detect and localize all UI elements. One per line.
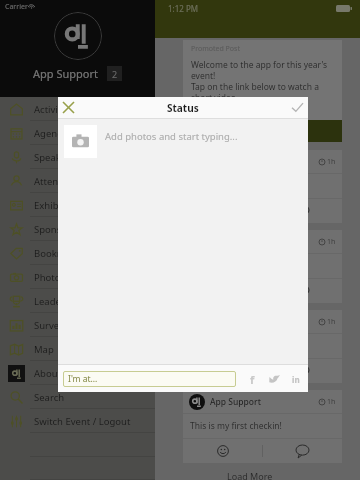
button[interactable]: Share on Twitter (267, 372, 281, 386)
button[interactable]: Switch Event / Logout (0, 409, 155, 433)
staticText: App Support (33, 66, 98, 81)
button[interactable]: Search (0, 385, 155, 409)
staticText: About (34, 367, 61, 380)
staticText: Switch Event / Logout (34, 415, 131, 428)
staticText: 1h (327, 397, 336, 407)
button[interactable]: Agenda (0, 121, 155, 145)
button[interactable]: Leaderboard (0, 289, 155, 313)
staticText: I'm at... (68, 373, 98, 385)
button[interactable]: App Support (183, 230, 342, 303)
button[interactable]: Photos (0, 265, 155, 289)
staticText: This is my first checkin! (190, 420, 282, 432)
staticText: 1h (327, 157, 336, 167)
button[interactable]: Close (58, 97, 79, 118)
button[interactable]: I'm at... (63, 371, 236, 387)
staticText: Attendees (34, 175, 80, 188)
button[interactable]: Load More (227, 470, 273, 480)
staticText: Carrier (5, 2, 28, 12)
staticText: Search (34, 391, 65, 404)
button[interactable]: Share on Facebook (245, 372, 259, 386)
button[interactable]: Comment (263, 199, 342, 223)
button[interactable]: Like (183, 359, 262, 383)
staticText: 1h (327, 317, 336, 327)
staticText: Leaderboard (34, 295, 92, 308)
button[interactable]: Map (0, 337, 155, 361)
staticText: 1:12 PM (168, 3, 199, 14)
button[interactable]: Activity (0, 97, 155, 121)
button[interactable]: Your Video Guide (183, 120, 342, 142)
staticText: Speakers (34, 151, 75, 164)
button[interactable]: Surveys (0, 313, 155, 337)
button[interactable]: App Support (183, 150, 342, 223)
button[interactable]: Exhibitors (0, 193, 155, 217)
staticText: Sponsors (34, 223, 76, 236)
staticText: Status (167, 101, 199, 115)
staticText: Bookmarks (34, 247, 85, 260)
button[interactable]: Comment (263, 439, 342, 463)
button[interactable]: Share on LinkedIn (289, 372, 303, 386)
button[interactable]: Sponsors (0, 217, 155, 241)
button[interactable]: Comment (263, 359, 342, 383)
staticText: f (250, 372, 255, 386)
staticText: Exhibitors (34, 199, 79, 212)
button[interactable]: Speakers (0, 145, 155, 169)
staticText: 2 (112, 68, 118, 80)
button[interactable]: Bookmarks (0, 241, 155, 265)
button[interactable]: App Support (183, 310, 342, 383)
staticText: Photos (34, 271, 66, 284)
staticText: Promoted Post (191, 44, 240, 54)
staticText: in (292, 374, 300, 385)
staticText: Surveys (34, 319, 69, 332)
staticText: 1h (327, 237, 336, 247)
staticText: App Support (210, 396, 261, 408)
staticText: Activity (34, 103, 67, 116)
button[interactable]: Like (183, 439, 262, 463)
button[interactable]: Add photo (64, 125, 97, 158)
staticText: Map (34, 343, 54, 356)
button[interactable]: Attendees (0, 169, 155, 193)
button[interactable]: About (0, 361, 155, 385)
button[interactable]: Post (287, 97, 308, 118)
staticText: Welcome to the app for this year's event… (191, 59, 342, 114)
button[interactable]: App Support (183, 390, 342, 463)
button[interactable]: Comment (263, 279, 342, 303)
staticText: Agenda (34, 127, 69, 140)
staticText: Add photos and start typing... (105, 130, 238, 143)
staticText: Your Video Guide (226, 125, 299, 137)
